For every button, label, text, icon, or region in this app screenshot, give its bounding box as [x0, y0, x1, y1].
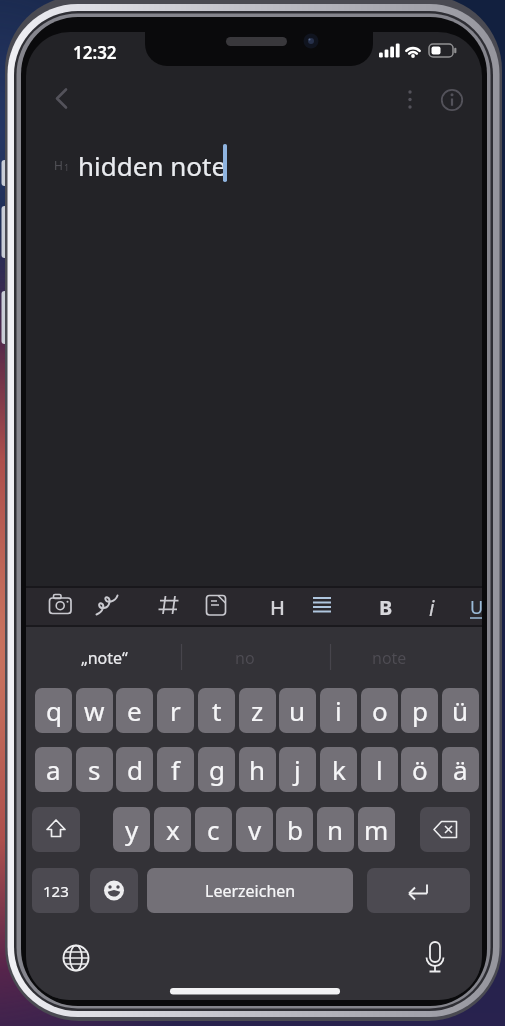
staticText: t: [212, 693, 222, 728]
staticText: 1: [64, 161, 70, 173]
staticText: H: [270, 594, 285, 621]
button[interactable]: [91, 590, 123, 622]
button[interactable]: [90, 868, 138, 913]
staticText: y: [125, 812, 139, 847]
staticText: m: [364, 812, 389, 847]
button[interactable]: [367, 868, 470, 913]
button[interactable]: d: [116, 747, 153, 792]
button[interactable]: m: [358, 807, 395, 852]
staticText: Leerzeichen: [205, 880, 296, 902]
button[interactable]: [420, 807, 470, 852]
button[interactable]: e: [116, 688, 153, 733]
staticText: f: [171, 752, 180, 787]
staticText: i: [335, 693, 342, 728]
button[interactable]: p: [401, 688, 438, 733]
button[interactable]: [36, 635, 176, 677]
staticText: l: [376, 752, 383, 787]
button[interactable]: [306, 590, 338, 622]
staticText: ö: [412, 752, 428, 787]
button[interactable]: [370, 590, 402, 622]
button[interactable]: c: [195, 807, 232, 852]
staticText: i: [429, 594, 435, 623]
button[interactable]: h: [239, 747, 276, 792]
button[interactable]: [46, 82, 78, 114]
button[interactable]: o: [361, 688, 398, 733]
button[interactable]: [416, 590, 448, 622]
button[interactable]: ö: [401, 747, 438, 792]
button[interactable]: u: [279, 688, 316, 733]
staticText: j: [294, 752, 301, 787]
button[interactable]: q: [35, 688, 72, 733]
staticText: no: [235, 647, 255, 669]
staticText: a: [46, 752, 61, 787]
staticText: B: [379, 594, 393, 621]
staticText: r: [170, 693, 181, 728]
staticText: x: [166, 812, 180, 847]
staticText: k: [332, 752, 346, 787]
staticText: q: [46, 693, 62, 728]
button[interactable]: i: [320, 688, 357, 733]
button[interactable]: ä: [442, 747, 479, 792]
button[interactable]: l: [361, 747, 398, 792]
staticText: p: [412, 693, 428, 728]
button[interactable]: s: [76, 747, 113, 792]
staticText: hidden note: [78, 148, 227, 183]
button[interactable]: [336, 635, 476, 677]
button[interactable]: f: [157, 747, 194, 792]
staticText: s: [88, 752, 101, 787]
staticText: z: [251, 693, 264, 728]
staticText: v: [248, 812, 262, 847]
staticText: w: [84, 693, 105, 728]
staticText: H: [54, 157, 63, 173]
staticText: g: [209, 752, 225, 787]
button[interactable]: [418, 940, 452, 976]
button[interactable]: [44, 590, 76, 622]
button[interactable]: [200, 590, 232, 622]
button[interactable]: v: [236, 807, 273, 852]
staticText: o: [372, 693, 388, 728]
button[interactable]: w: [76, 688, 113, 733]
button[interactable]: [394, 84, 422, 112]
staticText: h: [249, 752, 266, 787]
button[interactable]: j: [279, 747, 316, 792]
button[interactable]: g: [198, 747, 235, 792]
staticText: e: [127, 693, 142, 728]
staticText: 123: [43, 881, 69, 901]
staticText: u: [289, 693, 306, 728]
staticText: ä: [453, 752, 468, 787]
button[interactable]: r: [157, 688, 194, 733]
staticText: n: [327, 812, 344, 847]
button[interactable]: y: [113, 807, 150, 852]
button[interactable]: [153, 590, 185, 622]
staticText: 12:32: [73, 41, 117, 64]
button[interactable]: k: [320, 747, 357, 792]
button[interactable]: ü: [442, 688, 479, 733]
button[interactable]: [32, 807, 80, 852]
staticText: U: [470, 595, 482, 620]
button[interactable]: t: [198, 688, 235, 733]
staticText: note: [372, 647, 407, 669]
button[interactable]: n: [317, 807, 354, 852]
button[interactable]: Leerzeichen: [147, 868, 353, 913]
button[interactable]: [462, 590, 482, 622]
staticText: c: [207, 812, 220, 847]
button[interactable]: z: [239, 688, 276, 733]
staticText: ü: [452, 693, 469, 728]
button[interactable]: [262, 590, 294, 622]
button[interactable]: b: [276, 807, 313, 852]
staticText: b: [287, 812, 303, 847]
staticText: d: [127, 752, 143, 787]
button[interactable]: 123: [32, 868, 79, 913]
staticText: „note“: [81, 647, 128, 669]
button[interactable]: x: [154, 807, 191, 852]
button[interactable]: [60, 940, 94, 976]
button[interactable]: a: [35, 747, 72, 792]
button[interactable]: [436, 84, 468, 116]
